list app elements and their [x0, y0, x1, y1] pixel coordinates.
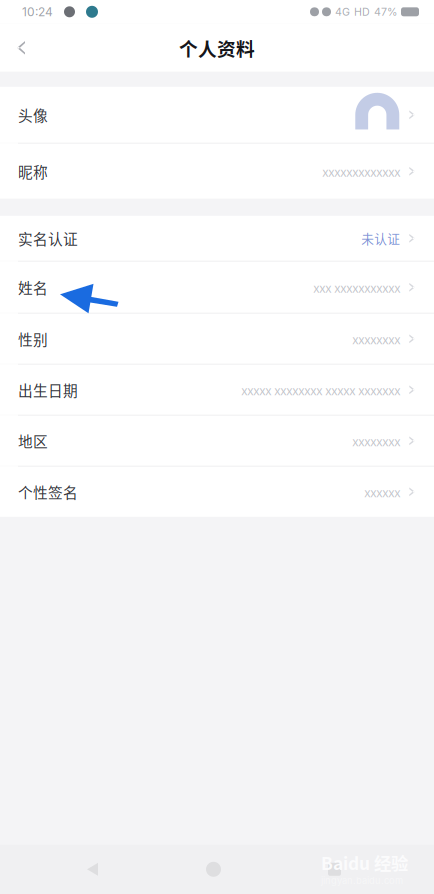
button[interactable]: 姓名	[0, 262, 434, 313]
button[interactable]: 实名认证	[0, 216, 434, 261]
staticText: HD	[354, 5, 370, 18]
staticText: 实名认证	[18, 228, 78, 249]
staticText: xxxxxxxx	[352, 432, 400, 450]
staticText: xxx xxxxxxxxxxx	[313, 278, 400, 296]
staticText: xxxxxxxxxxxxx	[322, 162, 400, 180]
staticText: 昵称	[18, 161, 48, 182]
button[interactable]: 头像	[0, 87, 434, 143]
button[interactable]: 性别	[0, 314, 434, 364]
staticText: 出生日期	[18, 379, 78, 400]
staticText: 10:24	[22, 4, 53, 19]
button[interactable]: 个性签名	[0, 467, 434, 517]
staticText: xxxxxxxx	[352, 330, 400, 348]
staticText: xxxxx xxxxxxxx xxxxx xxxxxxx	[241, 381, 400, 399]
staticText: 47%	[374, 5, 397, 18]
button[interactable]: 出生日期	[0, 365, 434, 415]
button[interactable]: 地区	[0, 416, 434, 466]
staticText: 未认证	[361, 229, 400, 247]
staticText: 性别	[18, 328, 48, 349]
staticText: 个性签名	[18, 481, 78, 502]
staticText: xxxxxx	[364, 483, 400, 501]
staticText: 4G	[335, 5, 350, 18]
button[interactable]: Recents	[274, 845, 395, 894]
staticText: 个人资料	[179, 34, 255, 61]
staticText: 姓名	[18, 277, 48, 298]
button[interactable]: Back	[0, 24, 42, 72]
button[interactable]: 昵称	[0, 144, 434, 199]
staticText: Baidu 经验	[321, 850, 408, 875]
staticText: 头像	[18, 104, 48, 125]
staticText: 地区	[18, 430, 48, 451]
